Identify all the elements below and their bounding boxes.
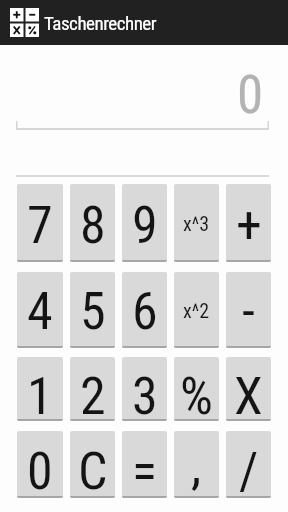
button[interactable]: 9	[122, 184, 167, 262]
staticText: 9	[132, 195, 158, 256]
button[interactable]: -	[226, 272, 271, 348]
staticText: 2	[80, 366, 106, 421]
button[interactable]: 8	[70, 184, 115, 262]
staticText: %	[180, 366, 213, 421]
staticText: 4	[27, 281, 53, 342]
button[interactable]: /	[226, 431, 271, 498]
staticText: ,	[191, 436, 202, 497]
staticText: /	[239, 441, 259, 498]
staticText: 0	[237, 64, 264, 126]
staticText: 8	[80, 195, 106, 256]
staticText: 5	[80, 281, 106, 342]
staticText: x^3	[183, 212, 210, 235]
button[interactable]: x^3	[174, 184, 219, 262]
button[interactable]: 7	[17, 184, 63, 262]
button[interactable]: %	[174, 357, 219, 421]
staticText: =	[132, 441, 157, 498]
staticText: 3	[132, 366, 158, 421]
staticText: 0	[27, 441, 53, 498]
button[interactable]: +	[226, 184, 271, 262]
staticText: x^2	[183, 299, 210, 322]
button[interactable]: 6	[122, 272, 167, 348]
staticText: 6	[132, 281, 158, 342]
staticText: X	[234, 366, 263, 421]
button[interactable]: =	[122, 431, 167, 498]
button[interactable]: 0	[17, 431, 63, 498]
staticText: C	[78, 441, 108, 498]
staticText: -	[242, 281, 255, 342]
button[interactable]: 2	[70, 357, 115, 421]
staticText: +	[236, 195, 262, 256]
button[interactable]: X	[226, 357, 271, 421]
staticText: Taschenrechner	[44, 12, 157, 34]
button[interactable]: ,	[174, 431, 219, 498]
button[interactable]: Taschenrechner	[0, 0, 288, 45]
staticText: 7	[27, 195, 53, 256]
button[interactable]: 1	[17, 357, 63, 421]
button[interactable]: x^2	[174, 272, 219, 348]
staticText: 1	[27, 366, 53, 421]
button[interactable]: 5	[70, 272, 115, 348]
button[interactable]: 3	[122, 357, 167, 421]
button[interactable]: 4	[17, 272, 63, 348]
button[interactable]: C	[70, 431, 115, 498]
